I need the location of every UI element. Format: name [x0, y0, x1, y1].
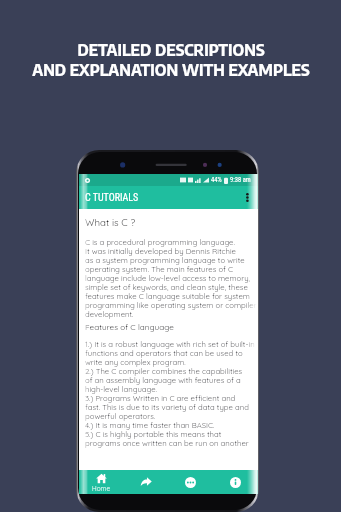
button[interactable]: Info: [213, 470, 258, 494]
button[interactable]: More options: [240, 186, 254, 209]
staticText: What is C ?: [85, 216, 136, 228]
staticText: Features of C language: [85, 322, 174, 332]
staticText: DETAILED DESCRIPTIONS: [77, 39, 265, 59]
staticText: 1.) It is a robust language with rich se…: [85, 339, 255, 448]
staticText: 44%: [211, 176, 222, 184]
button[interactable]: Share: [123, 470, 168, 494]
button[interactable]: Home: [79, 470, 123, 494]
staticText: Home: [92, 484, 111, 492]
button[interactable]: More: [168, 470, 213, 494]
staticText: C is a procedural programming language. …: [85, 237, 257, 319]
staticText: C TUTORIALS: [85, 192, 139, 204]
staticText: AND EXPLANATION WITH EXAMPLES: [32, 59, 310, 79]
staticText: 9:38 am: [230, 176, 251, 184]
